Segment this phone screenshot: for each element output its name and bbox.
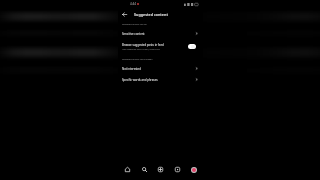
button[interactable]: Browse suggested posts in feed: [118, 41, 203, 52]
staticText: Specific words and phrases: [122, 78, 158, 82]
staticText: Suggested content you see: [122, 23, 147, 26]
button[interactable]: Create: [155, 164, 166, 175]
staticText: Suggested content: [134, 12, 168, 17]
staticText: Hide suggested posts in feed, temporaril…: [122, 48, 161, 51]
staticText: Browse suggested posts in feed: [122, 43, 164, 47]
button[interactable]: Specific words and phrases: [118, 75, 203, 84]
button[interactable]: Back: [120, 10, 128, 18]
staticText: Sensitive content: [122, 32, 145, 36]
button[interactable]: Reels: [172, 164, 183, 175]
staticText: Not interested: [122, 67, 141, 71]
staticText: Suggested content you've hidden: [122, 58, 153, 61]
button[interactable]: Not interested: [118, 64, 203, 73]
button[interactable]: Search: [139, 164, 150, 175]
button[interactable]: Home: [122, 164, 133, 175]
staticText: 4:44: [130, 2, 136, 6]
button[interactable]: Profile: [188, 164, 199, 175]
button[interactable]: Sensitive content: [118, 29, 203, 38]
